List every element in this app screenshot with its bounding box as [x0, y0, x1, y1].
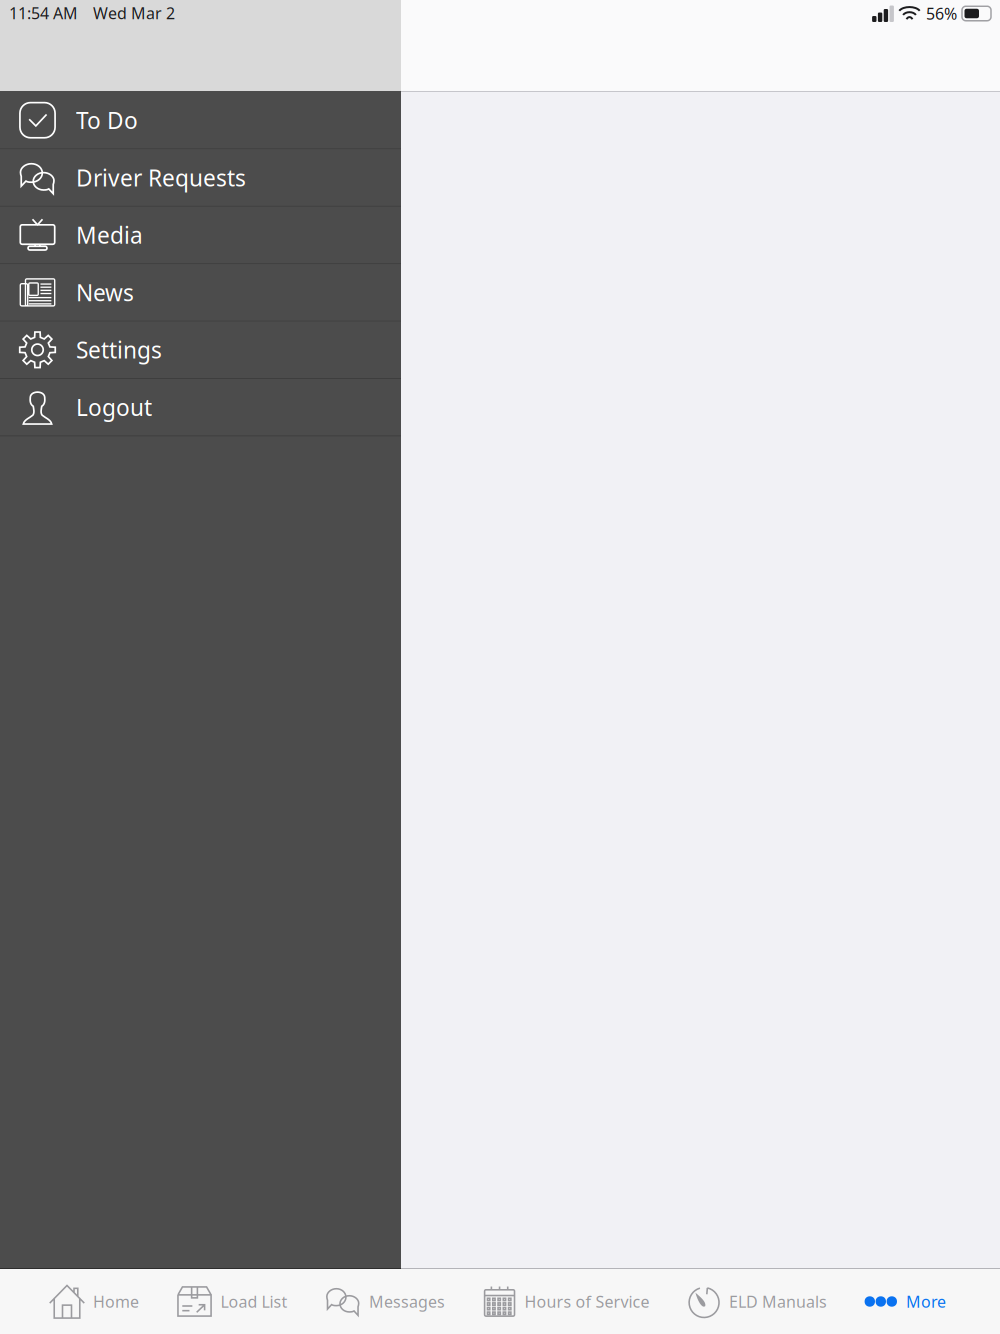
staticText: Home	[93, 1291, 139, 1312]
button[interactable]: Media	[0, 207, 401, 263]
staticText: News	[76, 277, 134, 307]
button[interactable]: News	[0, 264, 401, 321]
staticText: More	[906, 1291, 946, 1312]
button[interactable]: Messages	[325, 1269, 445, 1334]
staticText: To Do	[76, 105, 138, 135]
button[interactable]: Hours of Service	[483, 1269, 650, 1334]
staticText: Driver Requests	[76, 162, 246, 193]
staticText: Load List	[220, 1291, 287, 1312]
button[interactable]: ELD Manuals	[687, 1269, 827, 1334]
button[interactable]: Logout	[0, 379, 401, 435]
button[interactable]: Home	[49, 1269, 139, 1334]
button[interactable]: To Do	[0, 92, 401, 148]
staticText: Wed Mar 2	[93, 2, 175, 24]
staticText: Hours of Service	[525, 1291, 650, 1312]
staticText: 56%	[926, 3, 957, 24]
staticText: Messages	[369, 1291, 445, 1312]
button[interactable]: Load List	[176, 1269, 287, 1334]
button[interactable]: Settings	[0, 322, 401, 378]
staticText: Settings	[76, 335, 162, 365]
staticText: ELD Manuals	[729, 1291, 827, 1312]
staticText: Media	[76, 220, 143, 250]
staticText: Logout	[76, 392, 152, 422]
button[interactable]: More	[865, 1269, 946, 1334]
button[interactable]: Driver Requests	[0, 149, 401, 206]
staticText: 11:54 AM	[9, 2, 78, 24]
